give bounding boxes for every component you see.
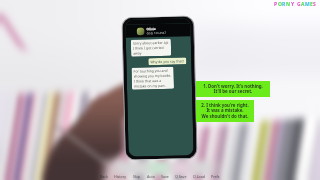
staticText: A [301, 1, 305, 8]
staticText: For touching you and showing you my boob… [133, 68, 172, 89]
staticText: R [282, 1, 286, 8]
staticText: G [297, 1, 301, 8]
button[interactable]: Phone chat with Olivia [125, 18, 194, 157]
button[interactable]: Prefs [208, 174, 223, 179]
staticText: Why do you say that? [150, 58, 184, 64]
staticText: S [313, 1, 316, 8]
staticText: Back [100, 174, 108, 179]
button[interactable]: History [111, 174, 130, 179]
staticText: Auto [147, 174, 155, 179]
staticText: Sorry about earlier Ajz I think I got ca… [133, 40, 169, 56]
button[interactable]: 2. I think you're right. It was a mistak… [196, 100, 254, 122]
staticText: 1. Don't worry. It's nothing. It'll be o… [203, 83, 263, 95]
staticText: M [305, 1, 310, 8]
staticText: Save [161, 174, 169, 179]
button[interactable]: Q.Save [172, 174, 190, 179]
button[interactable]: Skip [130, 174, 144, 179]
staticText: Y [291, 1, 295, 8]
button[interactable]: Back [97, 174, 111, 179]
button[interactable]: Auto [144, 174, 158, 179]
staticText: Q.Load [193, 174, 205, 179]
staticText: O [278, 1, 282, 8]
staticText: Prefs [211, 174, 220, 179]
staticText: P [274, 1, 278, 8]
staticText: E [310, 1, 313, 8]
staticText: History [114, 174, 127, 179]
button[interactable]: Q.Load [190, 174, 208, 179]
staticText: N [286, 1, 291, 8]
staticText: Q.Save [175, 174, 187, 179]
staticText: 2. I think you're right. It was a mistak… [201, 102, 249, 120]
staticText: Olivia [146, 27, 157, 31]
button[interactable]: Save [158, 174, 172, 179]
staticText: (555) 123-4567 [147, 31, 167, 35]
button[interactable]: 1. Don't worry. It's nothing. It'll be o… [196, 81, 270, 97]
staticText: Skip [133, 174, 141, 179]
